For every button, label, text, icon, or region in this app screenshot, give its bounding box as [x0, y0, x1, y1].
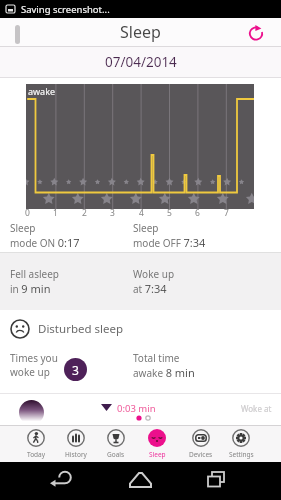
button[interactable]: [247, 23, 265, 41]
button[interactable]: Times you woke up: [0, 348, 281, 393]
staticText: 07/04/2014: [105, 53, 177, 71]
button[interactable]: 0:03 min: [0, 393, 281, 425]
staticText: 1: [53, 207, 58, 218]
staticText: mode ON 0:17: [10, 235, 80, 250]
staticText: History: [65, 450, 87, 459]
staticText: Settings: [229, 450, 254, 459]
staticText: at 7:34: [133, 281, 167, 296]
staticText: Today: [27, 450, 46, 459]
staticText: Woke up: [133, 267, 175, 281]
staticText: Sleep: [149, 450, 166, 459]
staticText: awake 8 min: [133, 365, 195, 380]
staticText: Sleep: [133, 221, 159, 235]
staticText: 2: [82, 207, 87, 218]
staticText: 4: [139, 207, 144, 218]
button[interactable]: Today: [16, 427, 56, 463]
staticText: 3: [72, 362, 79, 378]
staticText: Times you woke up: [10, 351, 58, 379]
staticText: Sleep: [10, 221, 36, 235]
staticText: 7: [224, 207, 229, 218]
staticText: awake: [28, 85, 56, 97]
staticText: 0: [25, 207, 30, 218]
button[interactable]: Sleep: [137, 427, 177, 463]
button[interactable]: Goals: [96, 427, 136, 463]
staticText: Disturbed sleep: [38, 321, 124, 337]
staticText: 0:03 min: [117, 402, 156, 415]
staticText: in 9 min: [10, 281, 51, 296]
button[interactable]: Fell asleep: [0, 253, 281, 310]
button[interactable]: Settings: [221, 427, 261, 463]
button[interactable]: Devices: [181, 427, 221, 463]
button[interactable]: History: [56, 427, 96, 463]
staticText: 3: [110, 207, 115, 218]
button[interactable]: Sleep: [0, 220, 281, 252]
staticText: 6: [195, 207, 200, 218]
staticText: Sleep: [120, 21, 161, 43]
staticText: Total time: [133, 351, 180, 365]
staticText: mode OFF 7:34: [133, 235, 206, 250]
staticText: Fell asleep: [10, 267, 59, 281]
staticText: 5: [167, 207, 172, 218]
staticText: Saving screenshot...: [21, 3, 110, 16]
staticText: Devices: [189, 450, 213, 459]
staticText: Goals: [107, 450, 125, 459]
button[interactable]: 07/04/2014: [0, 47, 281, 77]
staticText: Woke at: [241, 403, 272, 414]
